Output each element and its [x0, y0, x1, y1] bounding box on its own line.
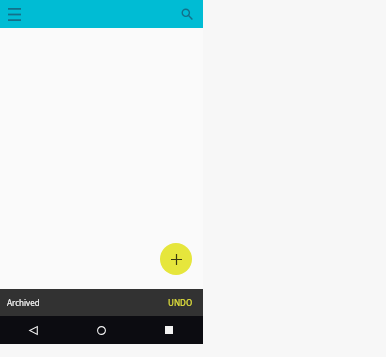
button[interactable]: Open navigation drawer	[2, 2, 26, 26]
button[interactable]: UNDO	[165, 294, 196, 311]
button[interactable]: Add	[160, 243, 192, 275]
staticText: Archived	[7, 297, 40, 308]
button[interactable]: Search	[175, 2, 199, 26]
button[interactable]: Recent apps	[135, 316, 203, 344]
button[interactable]: Back	[0, 316, 67, 344]
staticText: UNDO	[168, 297, 193, 308]
button[interactable]: Home	[67, 316, 135, 344]
